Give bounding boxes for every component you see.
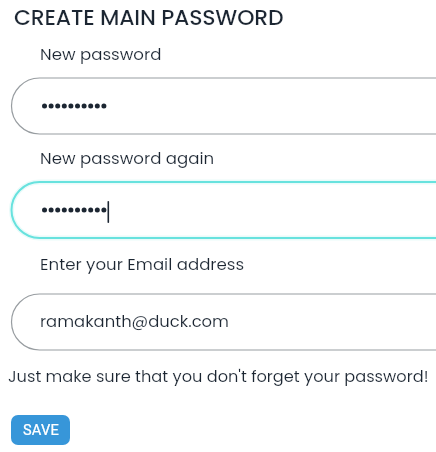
button[interactable] (11, 182, 436, 238)
staticText: New password again (40, 147, 215, 170)
staticText: Enter your Email address (40, 253, 245, 276)
button[interactable]: ramakanth@duck.com (11, 294, 436, 350)
staticText: New password (40, 43, 162, 66)
button[interactable]: SAVE (11, 415, 70, 445)
staticText: Just make sure that you don't forget you… (8, 365, 429, 388)
staticText: SAVE (23, 421, 59, 438)
button[interactable] (11, 78, 436, 134)
staticText: ramakanth@duck.com (40, 310, 229, 333)
staticText: CREATE MAIN PASSWORD (14, 2, 284, 33)
